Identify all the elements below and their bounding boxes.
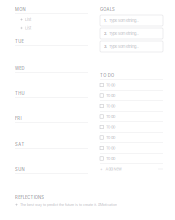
button[interactable]: To do — [100, 153, 163, 164]
button[interactable]: To do — [100, 80, 163, 90]
staticText: Type something... — [109, 44, 139, 49]
staticText: Type something... — [109, 18, 139, 23]
staticText: 1. — [104, 18, 107, 23]
staticText: MON — [15, 7, 25, 12]
staticText: THU — [15, 91, 24, 96]
button[interactable]: To do — [100, 111, 163, 122]
button[interactable]: To do — [100, 90, 163, 101]
button[interactable]: + — [100, 164, 163, 174]
staticText: + — [100, 167, 103, 171]
staticText: SAT — [15, 142, 24, 147]
button[interactable]: 1. — [100, 15, 163, 26]
staticText: To do — [106, 93, 115, 98]
staticText: Type something... — [109, 31, 139, 36]
button[interactable]: List — [20, 24, 88, 32]
button[interactable]: 3. — [100, 41, 163, 52]
button[interactable]: To do — [100, 101, 163, 111]
staticText: 2. — [104, 31, 107, 36]
button[interactable]: To do — [100, 122, 163, 132]
button[interactable]: List — [20, 15, 88, 23]
staticText: To do — [106, 146, 115, 150]
staticText: To do — [106, 135, 115, 140]
staticText: WED — [15, 66, 24, 71]
button[interactable]: To do — [100, 143, 163, 153]
staticText: Add New — [105, 167, 121, 171]
staticText: TUE — [15, 39, 23, 44]
staticText: REFLECTIONS — [15, 195, 44, 200]
staticText: FRI — [15, 116, 21, 121]
staticText: SUN — [15, 167, 24, 172]
staticText: 3. — [104, 44, 107, 49]
staticText: TO DO — [100, 73, 114, 78]
staticText: List — [25, 17, 31, 22]
staticText: GOALS — [100, 7, 115, 12]
button[interactable]: To do — [100, 132, 163, 143]
staticText: List — [25, 26, 31, 30]
staticText: To do — [106, 156, 115, 161]
staticText: The best way to predict the future is to… — [20, 202, 117, 207]
button[interactable]: 2. — [100, 28, 163, 39]
staticText: To do — [106, 83, 115, 87]
staticText: To do — [106, 125, 115, 129]
staticText: To do — [106, 104, 115, 108]
staticText: To do — [106, 114, 115, 119]
